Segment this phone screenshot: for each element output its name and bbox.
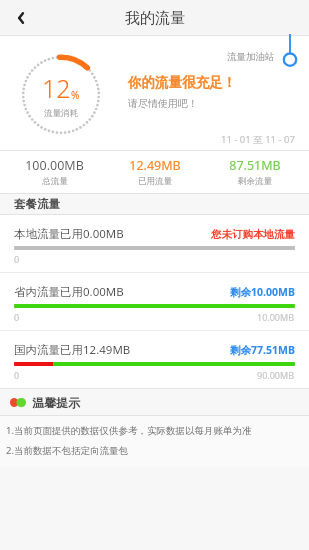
staticText: 87.51MB [229, 157, 281, 174]
button[interactable]: 流量加油站 [227, 46, 301, 68]
staticText: 温馨提示 [32, 395, 80, 410]
button[interactable]: 省内流量已用0.00MB [0, 273, 309, 330]
staticText: 100.00MB [25, 157, 84, 174]
staticText: 剩余10.00MB [230, 285, 295, 299]
staticText: 2.当前数据不包括定向流量包 [6, 444, 128, 457]
staticText: 10.00MB [257, 311, 295, 323]
staticText: 总流量 [42, 176, 68, 187]
button[interactable]: 本地流量已用0.00MB [0, 215, 309, 272]
staticText: 11 - 01 至 11 - 07 [221, 133, 295, 146]
staticText: 流量加油站 [227, 51, 275, 63]
button[interactable]: 国内流量已用12.49MB [0, 331, 309, 388]
staticText: 流量消耗 [44, 108, 78, 119]
button[interactable]: 100.00MB [4, 157, 105, 187]
staticText: 0 [14, 253, 20, 265]
staticText: 请尽情使用吧！ [128, 97, 198, 110]
staticText: 已用流量 [138, 176, 172, 187]
button[interactable]: 87.51MB [205, 157, 305, 187]
staticText: 12.49MB [129, 157, 181, 174]
staticText: 90.00MB [257, 369, 295, 381]
staticText: 我的流量 [125, 9, 185, 28]
staticText: 剩余流量 [238, 176, 272, 187]
staticText: 您未订购本地流量 [211, 228, 295, 241]
button[interactable]: 12.49MB [105, 157, 205, 187]
staticText: 12 [42, 71, 71, 105]
button[interactable]: Back [0, 0, 42, 36]
staticText: 你的流量很充足！ [128, 74, 236, 91]
staticText: 1.当前页面提供的数据仅供参考，实际数据以每月账单为准 [6, 424, 252, 437]
staticText: 0 [14, 369, 20, 381]
staticText: 国内流量已用12.49MB [14, 342, 131, 358]
staticText: 本地流量已用0.00MB [14, 226, 124, 242]
staticText: 省内流量已用0.00MB [14, 284, 124, 300]
staticText: 套餐流量 [14, 197, 60, 211]
staticText: 剩余77.51MB [230, 343, 295, 357]
staticText: % [71, 88, 80, 102]
staticText: 0 [14, 311, 20, 323]
